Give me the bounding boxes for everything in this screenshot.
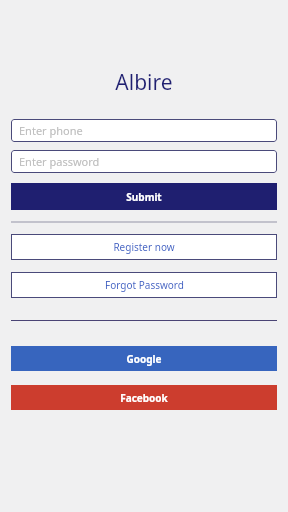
button[interactable]: Submit (11, 183, 277, 210)
staticText: Register now (113, 240, 175, 254)
staticText: Submit (126, 190, 162, 204)
staticText: Albire (11, 68, 277, 97)
button[interactable]: Enter password (11, 150, 277, 173)
button[interactable]: Forgot Password (11, 272, 277, 298)
button[interactable]: Register now (11, 234, 277, 260)
button[interactable]: Facebook (11, 385, 277, 410)
staticText: Enter phone (19, 123, 83, 138)
staticText: Google (126, 352, 162, 366)
button[interactable]: Enter phone (11, 119, 277, 142)
staticText: Facebook (120, 391, 168, 405)
staticText: Enter password (19, 154, 100, 169)
button[interactable]: Google (11, 346, 277, 371)
staticText: Forgot Password (105, 278, 184, 292)
